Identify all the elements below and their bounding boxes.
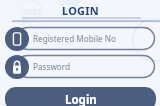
- button[interactable]: Registered Mobile No: [16, 27, 155, 50]
- staticText: Login: [65, 92, 97, 106]
- staticText: SMS: [23, 5, 42, 17]
- button[interactable]: Password: [16, 55, 155, 78]
- staticText: Password: [33, 61, 71, 72]
- button[interactable]: Password: [5, 55, 29, 79]
- staticText: SMS: [62, 0, 79, 7]
- staticText: LOGIN: [62, 3, 99, 18]
- button[interactable]: Mobile number: [5, 27, 29, 51]
- staticText: Registered Mobile No: [33, 33, 116, 44]
- button[interactable]: Login: [5, 87, 156, 106]
